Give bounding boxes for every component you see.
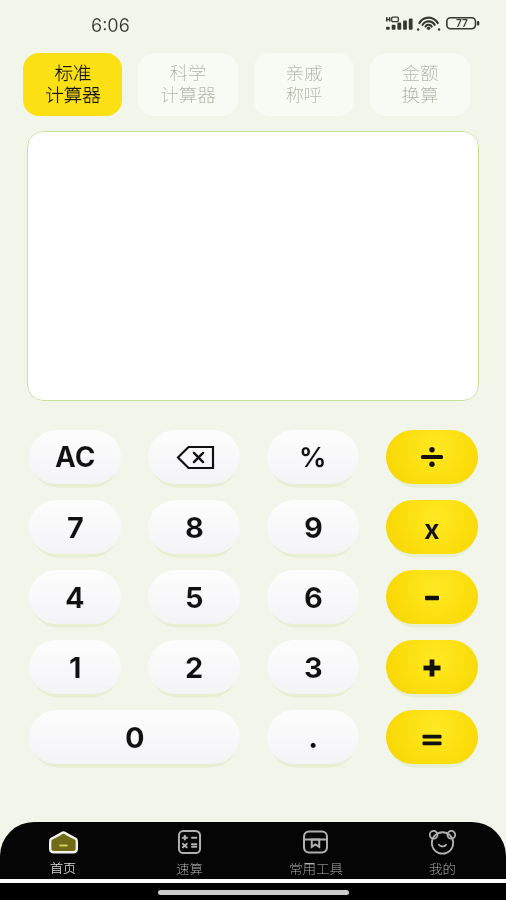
- button[interactable]: 4: [29, 570, 121, 624]
- button[interactable]: Equals: [386, 710, 478, 764]
- button[interactable]: 速算: [126, 822, 252, 879]
- staticText: 常用工具: [289, 858, 343, 878]
- button[interactable]: Plus: [386, 640, 478, 694]
- staticText: 77: [456, 17, 468, 29]
- staticText: x: [424, 513, 440, 546]
- staticText: 9: [304, 510, 323, 545]
- button[interactable]: AC: [29, 430, 121, 484]
- button[interactable]: 5: [148, 570, 240, 624]
- button[interactable]: 标准 计算器: [23, 53, 122, 116]
- staticText: 2: [185, 650, 204, 685]
- staticText: 标准 计算器: [45, 59, 101, 108]
- button[interactable]: 1: [29, 640, 121, 694]
- staticText: 5: [185, 580, 204, 615]
- button[interactable]: 我的: [379, 822, 506, 879]
- button[interactable]: 科学 计算器: [138, 53, 238, 116]
- staticText: 我的: [429, 858, 456, 878]
- staticText: .: [308, 718, 319, 756]
- button[interactable]: 3: [267, 640, 359, 694]
- button[interactable]: 0: [29, 710, 240, 764]
- button[interactable]: 亲戚 称呼: [254, 53, 354, 116]
- staticText: 3: [304, 650, 323, 685]
- staticText: 7: [67, 510, 84, 545]
- staticText: 金额 换算: [401, 59, 439, 108]
- staticText: 亲戚 称呼: [285, 59, 323, 108]
- button[interactable]: 2: [148, 640, 240, 694]
- button[interactable]: .: [267, 710, 359, 764]
- staticText: 首页: [50, 858, 77, 877]
- staticText: AC: [55, 440, 96, 474]
- button[interactable]: 金额 换算: [370, 53, 470, 116]
- staticText: 4: [65, 580, 85, 615]
- staticText: 6:06: [91, 15, 130, 37]
- button[interactable]: 6: [267, 570, 359, 624]
- button[interactable]: 常用工具: [252, 822, 379, 879]
- button[interactable]: 首页: [0, 822, 126, 879]
- staticText: 0: [125, 720, 145, 755]
- button[interactable]: 8: [148, 500, 240, 554]
- button[interactable]: x: [386, 500, 478, 554]
- staticText: 6: [304, 580, 323, 615]
- staticText: 速算: [176, 858, 203, 878]
- button[interactable]: 7: [29, 500, 121, 554]
- button[interactable]: 9: [267, 500, 359, 554]
- button[interactable]: %: [267, 430, 359, 484]
- button[interactable]: Backspace: [148, 430, 240, 484]
- staticText: 1: [69, 650, 82, 685]
- button[interactable]: Divide: [386, 430, 478, 484]
- staticText: 8: [185, 510, 204, 545]
- button[interactable]: Minus: [386, 570, 478, 624]
- staticText: %: [299, 441, 327, 474]
- staticText: 科学 计算器: [160, 59, 216, 108]
